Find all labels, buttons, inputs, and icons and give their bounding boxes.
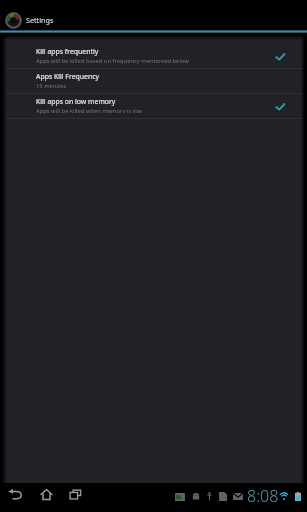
staticText: Apps Kill Frequency [36,72,99,81]
button[interactable]: Toggle Kill apps frequently [273,49,287,63]
staticText: Settings [26,15,54,25]
button[interactable]: Home [33,480,59,509]
staticText: 15 minutes [36,82,67,90]
button[interactable]: Recent apps [62,480,88,509]
button[interactable]: Kill apps on low memory [7,94,303,118]
staticText: Kill apps frequently [36,47,99,56]
staticText: Apps will be killed based on frequency m… [36,57,189,65]
button[interactable]: Back [2,480,28,509]
button[interactable]: Apps Kill Frequency [7,69,303,93]
staticText: Apps will be killed when memory is low [36,107,143,115]
staticText: 8:08 [247,485,279,507]
button[interactable]: Kill apps frequently [7,44,303,68]
button[interactable]: Toggle Kill apps on low memory [273,99,287,113]
staticText: Kill apps on low memory [36,97,116,106]
